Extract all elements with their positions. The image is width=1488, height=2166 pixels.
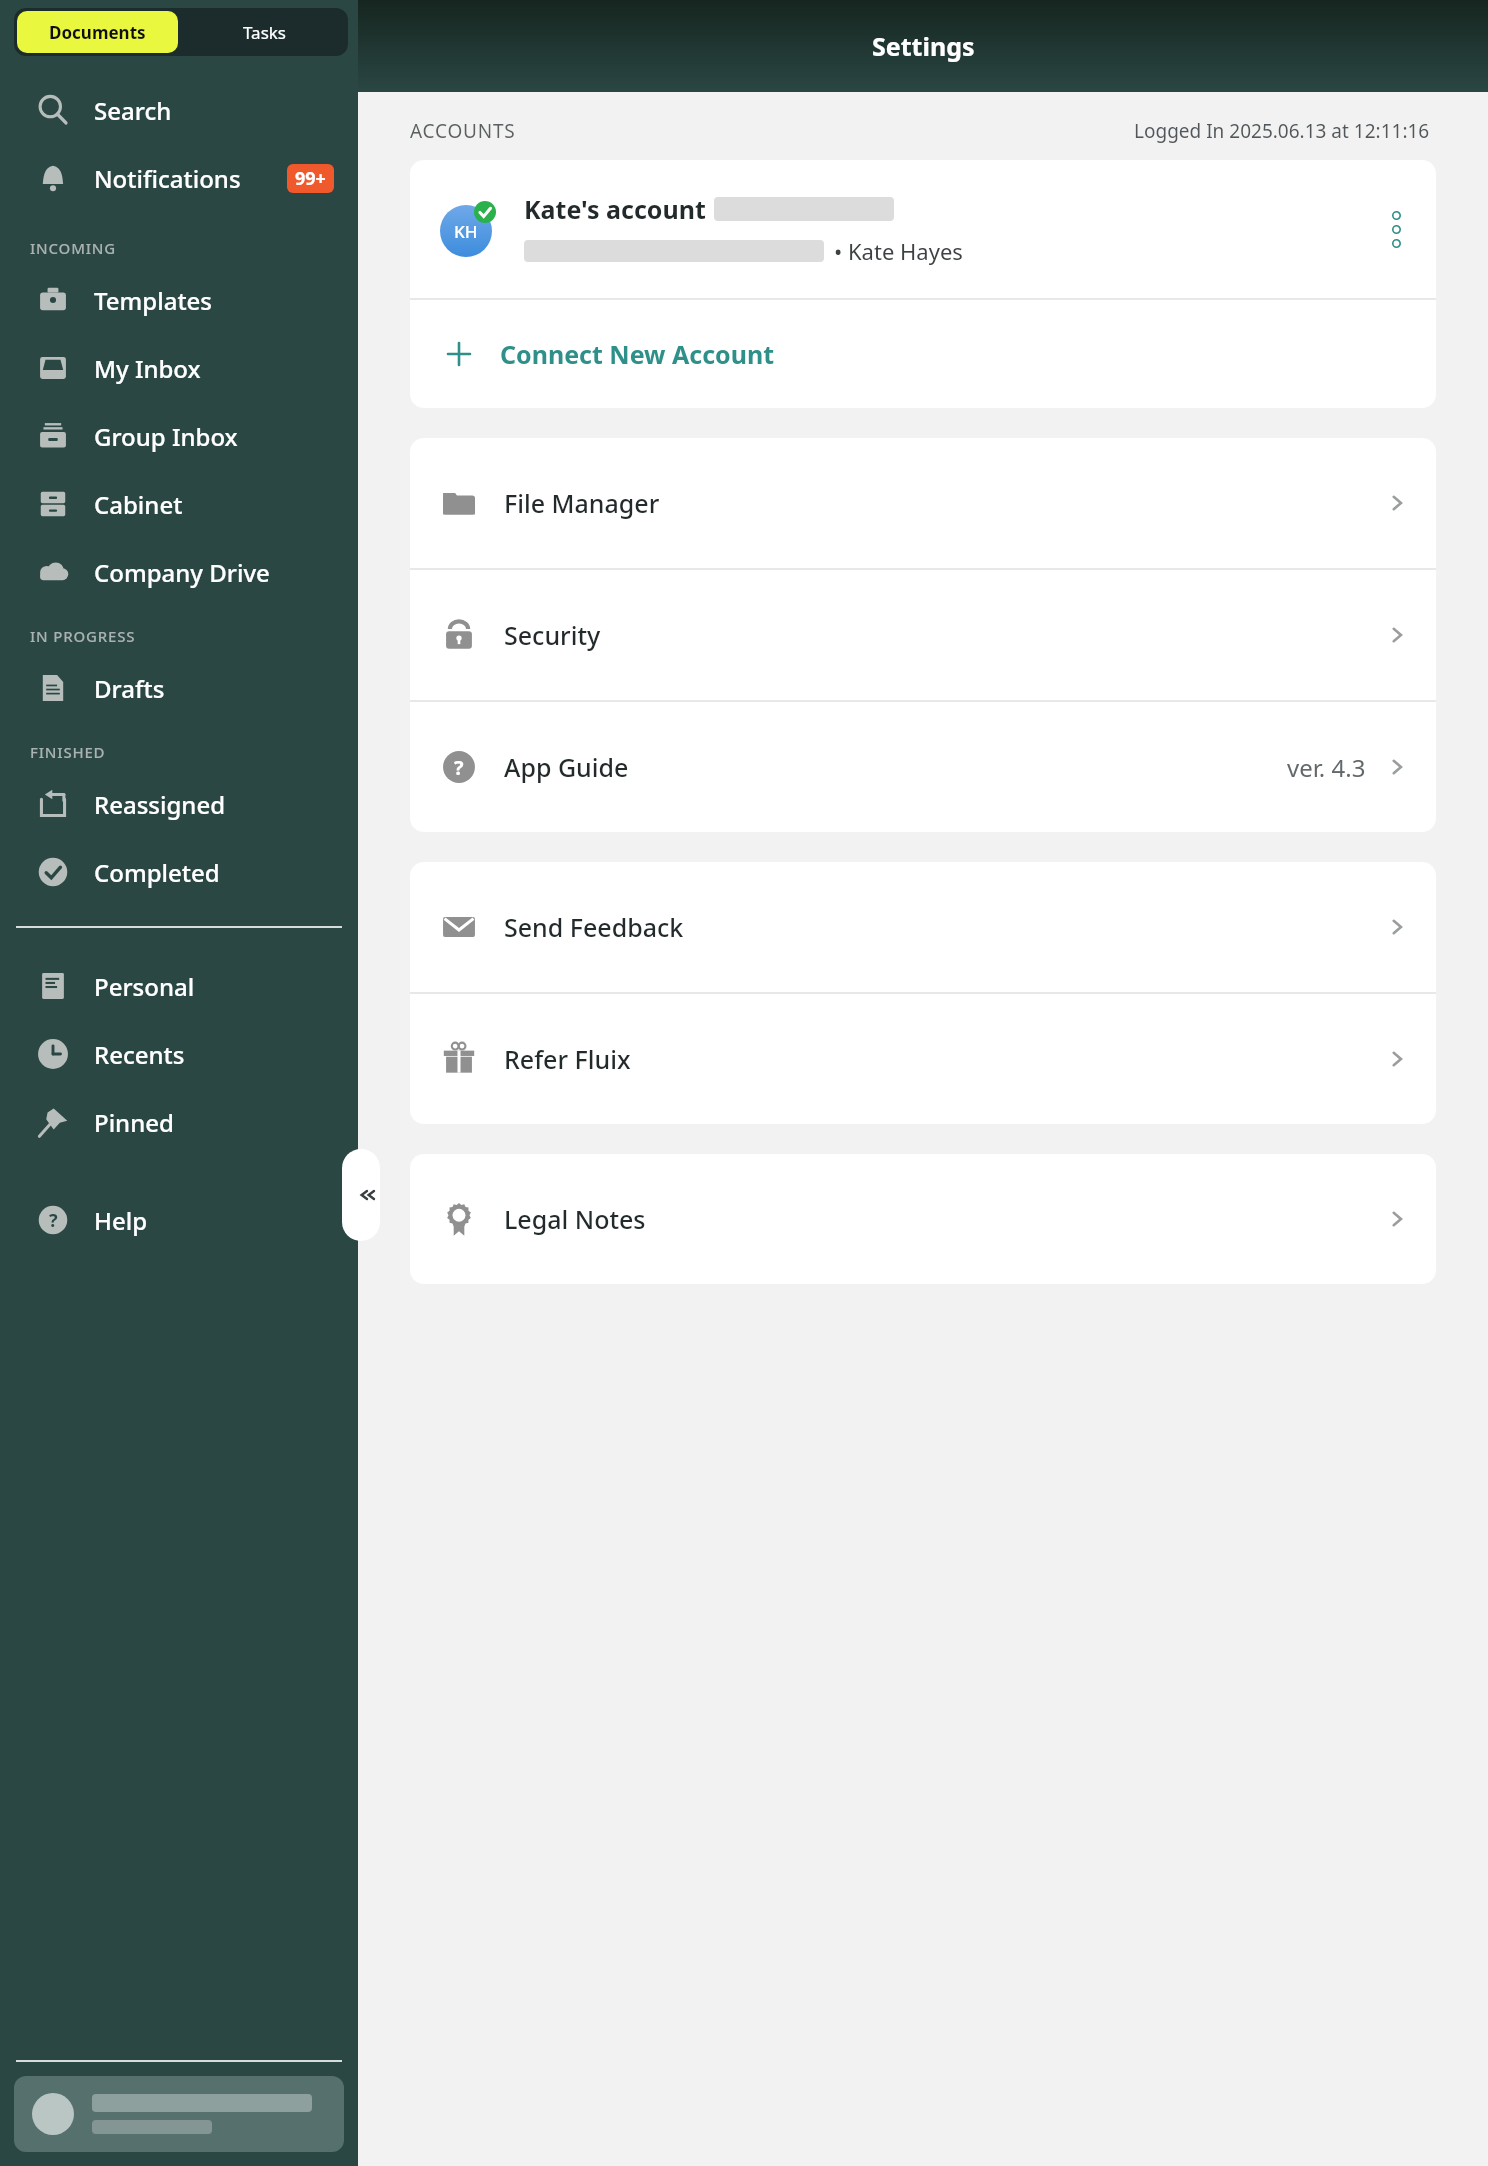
staticText: Kate's account: [524, 192, 706, 226]
staticText: Personal: [94, 970, 195, 1003]
button[interactable]: ?: [0, 1186, 358, 1254]
button[interactable]: Account options: [1356, 160, 1436, 298]
staticText: 99+: [295, 166, 326, 191]
button[interactable]: Send Feedback: [410, 862, 1436, 992]
button[interactable]: Group Inbox: [0, 402, 358, 470]
button[interactable]: Search: [0, 76, 358, 144]
staticText: Search: [94, 94, 172, 127]
staticText: Tasks: [243, 21, 286, 44]
button[interactable]: [14, 2076, 344, 2152]
button[interactable]: ?: [410, 702, 1436, 832]
staticText: Completed: [94, 856, 220, 889]
staticText: Logged In 2025.06.13 at 12:11:16: [1134, 118, 1430, 144]
staticText: Templates: [94, 284, 213, 317]
button[interactable]: Security: [410, 570, 1436, 700]
button[interactable]: Completed: [0, 838, 358, 906]
staticText: KH: [454, 220, 478, 243]
staticText: My Inbox: [94, 352, 201, 385]
staticText: IN PROGRESS: [30, 626, 136, 646]
staticText: Security: [504, 618, 601, 652]
staticText: Help: [94, 1204, 148, 1237]
button[interactable]: Personal: [0, 952, 358, 1020]
button[interactable]: Refer Fluix: [410, 994, 1436, 1124]
staticText: Legal Notes: [504, 1202, 646, 1236]
button[interactable]: Documents: [17, 11, 178, 53]
button[interactable]: Connect New Account: [410, 300, 1436, 408]
staticText: Send Feedback: [504, 910, 684, 944]
staticText: Documents: [49, 21, 146, 44]
staticText: Notifications: [94, 162, 241, 195]
staticText: ver. 4.3: [1287, 751, 1366, 784]
staticText: Reassigned: [94, 788, 226, 821]
staticText: App Guide: [504, 750, 629, 784]
staticText: INCOMING: [30, 238, 116, 258]
staticText: Cabinet: [94, 488, 183, 521]
staticText: • Kate Hayes: [834, 236, 963, 266]
button[interactable]: Legal Notes: [410, 1154, 1436, 1284]
button[interactable]: Pinned: [0, 1088, 358, 1156]
staticText: ?: [454, 754, 464, 781]
button[interactable]: Tasks: [181, 8, 348, 56]
button[interactable]: Collapse sidebar: [342, 1149, 380, 1241]
staticText: File Manager: [504, 486, 660, 520]
staticText: ACCOUNTS: [410, 118, 516, 144]
staticText: Refer Fluix: [504, 1042, 631, 1076]
button[interactable]: Recents: [0, 1020, 358, 1088]
button[interactable]: Reassigned: [0, 770, 358, 838]
button[interactable]: File Manager: [410, 438, 1436, 568]
button[interactable]: Notifications: [0, 144, 358, 212]
button[interactable]: Cabinet: [0, 470, 358, 538]
staticText: FINISHED: [30, 742, 106, 762]
staticText: Settings: [872, 29, 975, 63]
staticText: Connect New Account: [500, 337, 775, 371]
staticText: Drafts: [94, 672, 165, 705]
staticText: ?: [49, 1208, 58, 1233]
button[interactable]: Company Drive: [0, 538, 358, 606]
staticText: Company Drive: [94, 556, 270, 589]
button[interactable]: KH: [410, 160, 1436, 298]
staticText: Group Inbox: [94, 420, 238, 453]
button[interactable]: Templates: [0, 266, 358, 334]
staticText: Pinned: [94, 1106, 174, 1139]
button[interactable]: My Inbox: [0, 334, 358, 402]
staticText: Recents: [94, 1038, 185, 1071]
button[interactable]: Drafts: [0, 654, 358, 722]
